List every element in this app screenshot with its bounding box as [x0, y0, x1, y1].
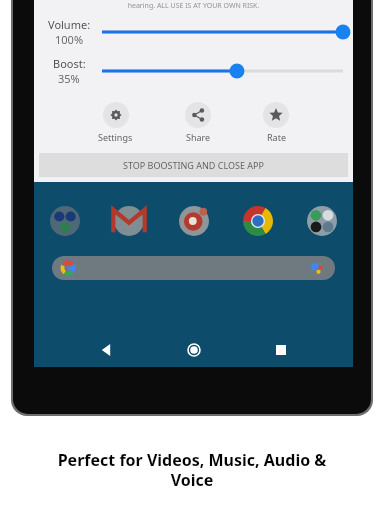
staticText: Volume: [48, 17, 91, 32]
button[interactable]: App [112, 204, 146, 238]
button[interactable]: App [305, 204, 339, 238]
staticText: STOP BOOSTING AND CLOSE APP [123, 159, 264, 171]
staticText: Share [186, 131, 211, 143]
button[interactable]: Recents [266, 335, 296, 365]
button[interactable]: Search [52, 256, 335, 280]
staticText: 35% [58, 71, 80, 86]
button[interactable]: App [177, 204, 211, 238]
staticText: Rate [267, 131, 286, 143]
staticText: 100% [55, 32, 84, 47]
button[interactable]: App [241, 204, 275, 238]
button[interactable]: Settings [96, 100, 135, 145]
staticText: Settings [98, 131, 133, 143]
button[interactable]: Share [183, 100, 213, 145]
button[interactable]: Back [91, 335, 121, 365]
button[interactable]: Rate [261, 100, 291, 145]
staticText: hearing. ALL USE IS AT YOUR OWN RISK. [34, 1, 353, 11]
button[interactable]: App [48, 204, 82, 238]
staticText: Boost: [53, 56, 86, 71]
button[interactable]: STOP BOOSTING AND CLOSE APP [39, 153, 348, 177]
staticText: Perfect for Videos, Music, Audio & Voice [16, 449, 368, 490]
button[interactable]: Home [179, 335, 209, 365]
